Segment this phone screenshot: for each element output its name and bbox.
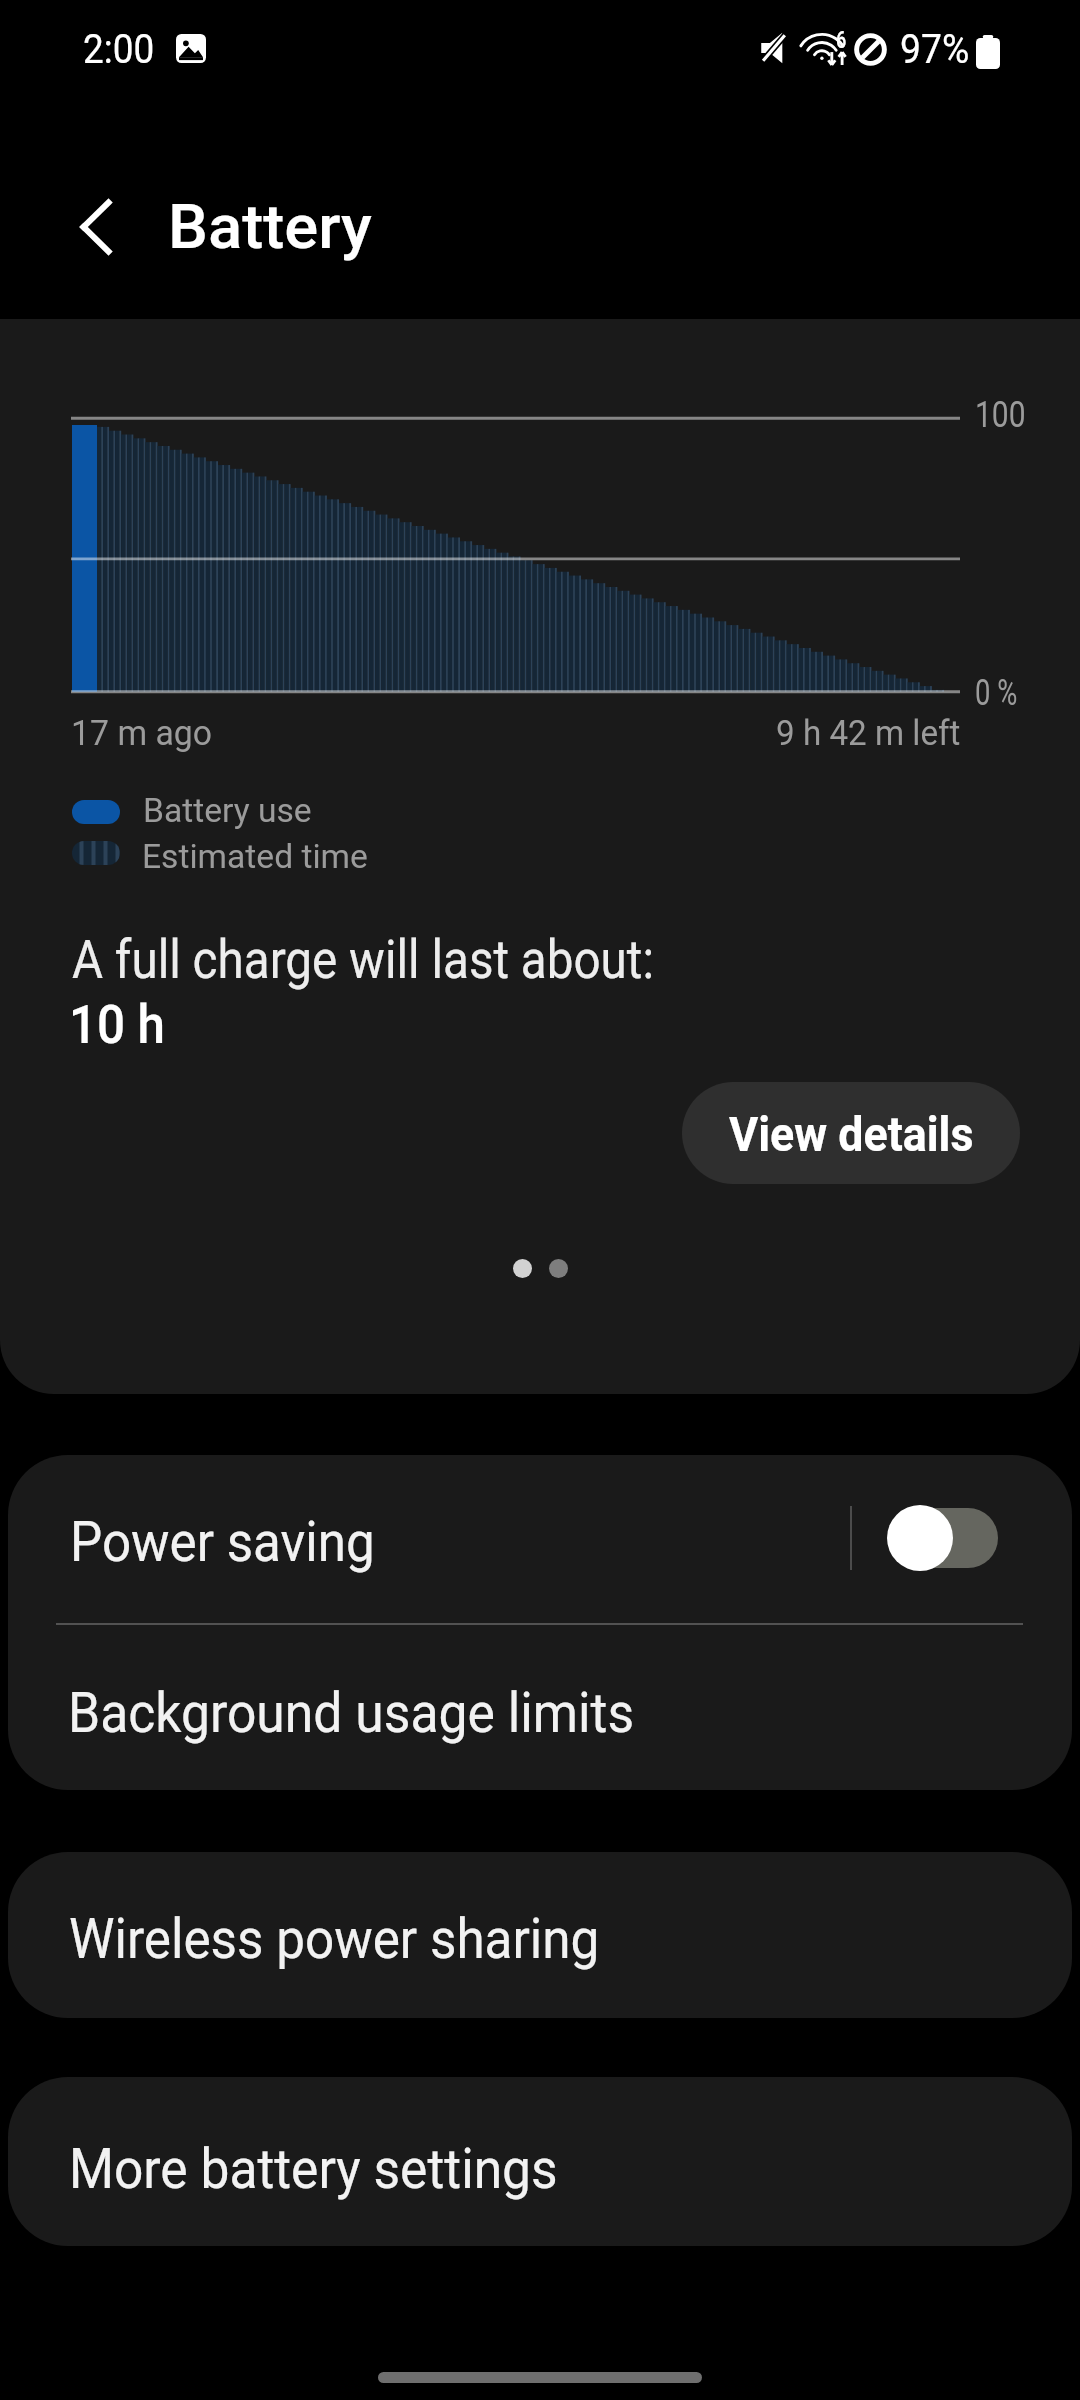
button[interactable]: Navigate up — [52, 183, 140, 271]
button[interactable]: Background usage limits — [8, 1625, 1072, 1790]
button[interactable]: More battery settings — [8, 2077, 1072, 2246]
button[interactable]: View details — [682, 1082, 1020, 1184]
button[interactable]: Power saving — [8, 1455, 1072, 1624]
button[interactable]: Power saving switch — [872, 1490, 1012, 1586]
button[interactable]: Wireless power sharing — [8, 1852, 1072, 2018]
